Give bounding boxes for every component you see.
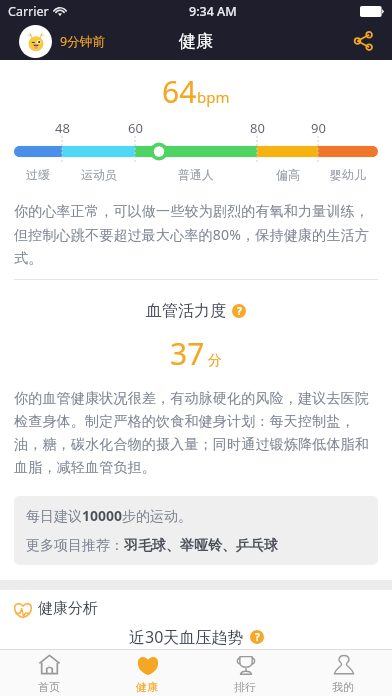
staticText: 80: [250, 119, 265, 136]
staticText: 近30天血压趋势: [129, 626, 244, 648]
button[interactable]: 我的: [294, 650, 392, 696]
staticText: ?: [255, 630, 260, 644]
staticText: 健康分析: [38, 599, 98, 618]
staticText: 37: [170, 333, 205, 374]
button[interactable]: 首页: [0, 650, 98, 696]
staticText: 普通人: [178, 167, 214, 182]
staticText: 血管活力度: [146, 301, 226, 321]
staticText: 首页: [38, 680, 60, 694]
staticText: 健康: [179, 31, 213, 52]
button[interactable]: Help: [232, 304, 246, 318]
button[interactable]: Share: [348, 26, 378, 56]
button[interactable]: 9分钟前: [19, 25, 105, 58]
staticText: 过缓: [26, 167, 50, 182]
staticText: 60: [128, 119, 143, 136]
staticText: ?: [237, 304, 242, 318]
button[interactable]: 每日建议10000步的运动。: [14, 496, 378, 565]
staticText: 分: [208, 352, 222, 370]
staticText: 婴幼儿: [330, 167, 366, 182]
staticText: Carrier: [8, 3, 49, 20]
staticText: 运动员: [81, 167, 117, 182]
staticText: 健康: [136, 680, 158, 694]
staticText: bpm: [197, 87, 230, 107]
staticText: 你的心率正常，可以做一些较为剧烈的有氧和力量训练，但控制心跳不要超过最大心率的8…: [14, 203, 378, 267]
staticText: 90: [311, 119, 326, 136]
staticText: 每日建议10000步的运动。: [26, 506, 193, 525]
staticText: 9分钟前: [60, 33, 105, 50]
button[interactable]: 健康: [98, 650, 196, 696]
staticText: 你的血管健康状况很差，有动脉硬化的风险，建议去医院检查身体。制定严格的饮食和健身…: [14, 390, 378, 476]
button[interactable]: Help: [250, 630, 264, 644]
staticText: 64: [162, 71, 197, 112]
staticText: 更多项目推荐：羽毛球、举哑铃、乒乓球: [26, 537, 278, 555]
button[interactable]: 排行: [196, 650, 294, 696]
staticText: 我的: [332, 680, 354, 694]
staticText: 48: [55, 119, 70, 136]
staticText: 偏高: [276, 167, 300, 182]
staticText: 排行: [234, 680, 256, 694]
staticText: 9:34 AM: [189, 3, 237, 20]
